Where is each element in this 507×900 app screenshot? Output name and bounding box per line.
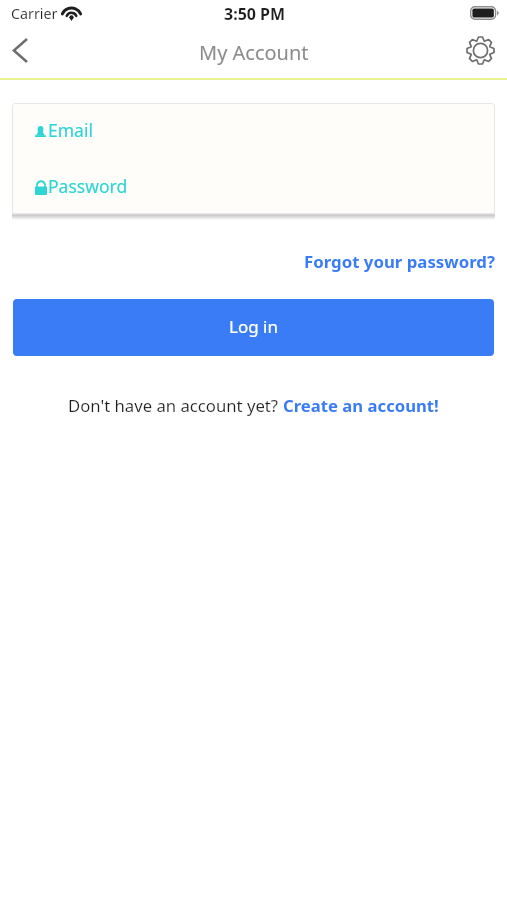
button[interactable]: Back	[0, 28, 56, 78]
staticText: Log in	[229, 315, 278, 338]
staticText: Email	[48, 118, 93, 142]
button[interactable]: Log in	[13, 299, 494, 356]
button[interactable]: Create an account!	[283, 394, 439, 417]
staticText: Carrier	[11, 4, 58, 23]
button[interactable]: Settings	[451, 28, 507, 78]
staticText: Password	[48, 174, 128, 198]
staticText: Forgot your password?	[304, 250, 495, 273]
staticText: My Account	[199, 39, 309, 66]
button[interactable]: Password	[12, 159, 495, 214]
button[interactable]: Email	[12, 103, 495, 158]
staticText: Create an account!	[283, 394, 439, 417]
staticText: 3:50 PM	[224, 3, 286, 25]
button[interactable]: Forgot your password?	[302, 247, 497, 276]
staticText: Don't have an account yet?	[68, 394, 283, 417]
